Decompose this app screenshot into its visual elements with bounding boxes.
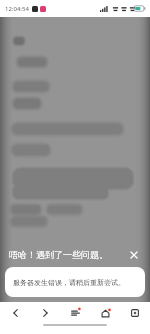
button[interactable]: Back: [0, 302, 30, 324]
button[interactable]: 服务器发生错误，请稍后重新尝试。: [5, 267, 145, 297]
staticText: 唔哈！遇到了一些问题。: [9, 249, 108, 260]
button[interactable]: Menu: [60, 302, 90, 324]
button[interactable]: Tabs: [120, 302, 150, 324]
button[interactable]: Forward: [30, 302, 60, 324]
staticText: 服务器发生错误，请稍后重新尝试。: [13, 278, 125, 287]
staticText: 12:04:54: [5, 5, 29, 13]
button[interactable]: Home: [90, 302, 120, 324]
button[interactable]: Close: [127, 248, 140, 261]
